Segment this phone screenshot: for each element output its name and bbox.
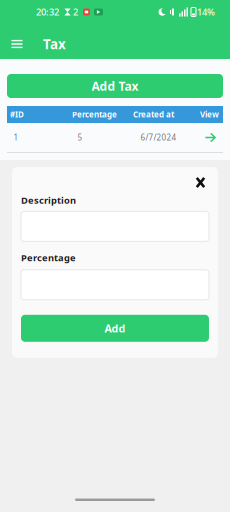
staticText: Add — [104, 321, 125, 335]
staticText: View — [200, 109, 219, 120]
staticText: #ID — [10, 109, 24, 120]
staticText: 1 — [13, 132, 18, 143]
staticText: Description — [21, 194, 76, 206]
staticText: Add Tax — [91, 78, 138, 94]
staticText: 5 — [77, 132, 82, 143]
staticText: Percentage — [72, 109, 117, 120]
staticText: Percentage — [21, 251, 76, 264]
button[interactable]: Add — [21, 315, 209, 342]
staticText: 14% — [197, 6, 215, 18]
button[interactable]: Close — [192, 173, 209, 192]
staticText: 2 — [73, 6, 78, 18]
button[interactable]: Menu — [3, 27, 31, 61]
button[interactable]: Add Tax — [7, 74, 223, 98]
staticText: Tax — [43, 35, 66, 53]
staticText: 20:32 — [36, 6, 59, 18]
staticText: Created at — [133, 109, 174, 120]
button[interactable]: 1 — [7, 123, 223, 152]
staticText: 6/7/2024 — [140, 132, 176, 143]
